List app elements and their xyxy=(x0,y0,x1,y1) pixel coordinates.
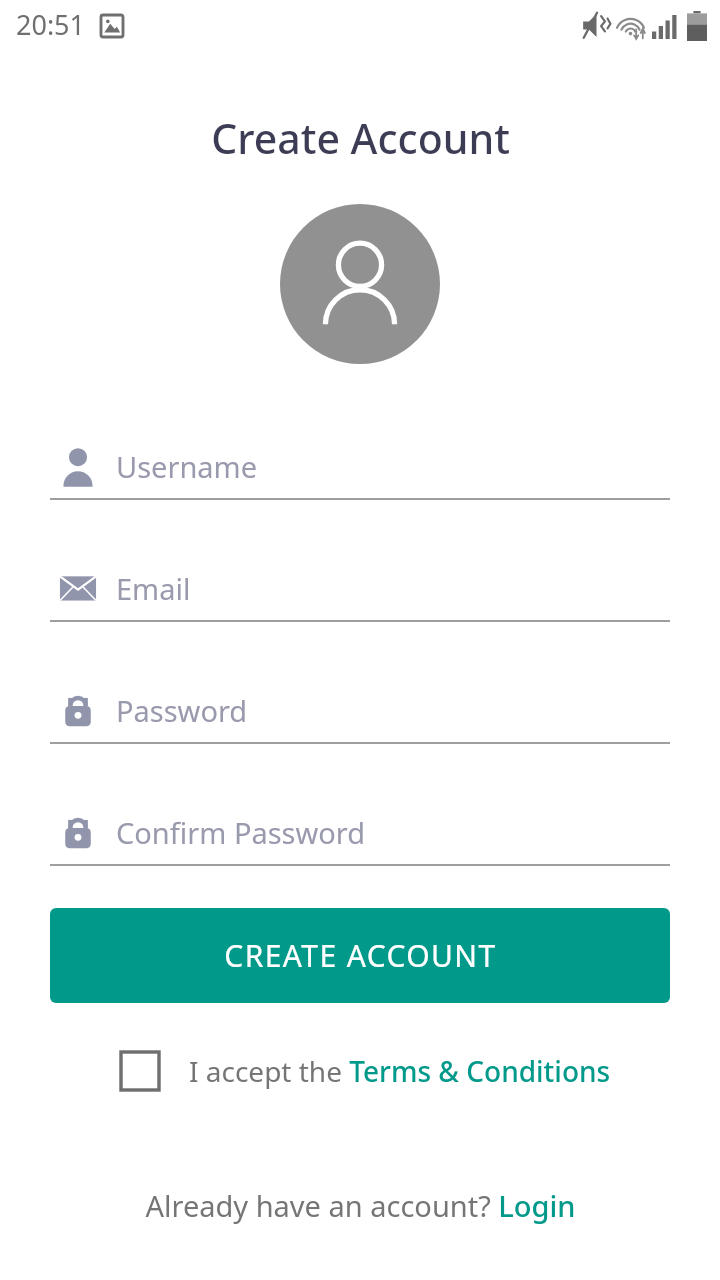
button[interactable]: Accept terms checkbox xyxy=(109,1040,171,1102)
button[interactable]: Profile photo xyxy=(280,204,440,364)
staticText: Confirm Password xyxy=(116,813,366,852)
staticText: Password xyxy=(116,691,248,730)
button[interactable]: Confirm Password xyxy=(50,798,670,866)
button[interactable]: Username xyxy=(50,432,670,500)
staticText: CREATE ACCOUNT xyxy=(224,935,497,976)
staticText: Create Account xyxy=(211,110,510,166)
staticText: 20:51 xyxy=(16,6,86,43)
button[interactable]: I accept the Terms & Conditions xyxy=(189,1052,611,1090)
staticText: Email xyxy=(116,569,191,608)
button[interactable]: Email xyxy=(50,554,670,622)
staticText: I accept the Terms & Conditions xyxy=(189,1052,611,1090)
button[interactable]: Already have an account? Login xyxy=(145,1186,576,1225)
button[interactable]: Password xyxy=(50,676,670,744)
staticText: Already have an account? Login xyxy=(145,1186,576,1225)
button[interactable]: CREATE ACCOUNT xyxy=(50,908,670,1003)
staticText: Username xyxy=(116,447,258,486)
